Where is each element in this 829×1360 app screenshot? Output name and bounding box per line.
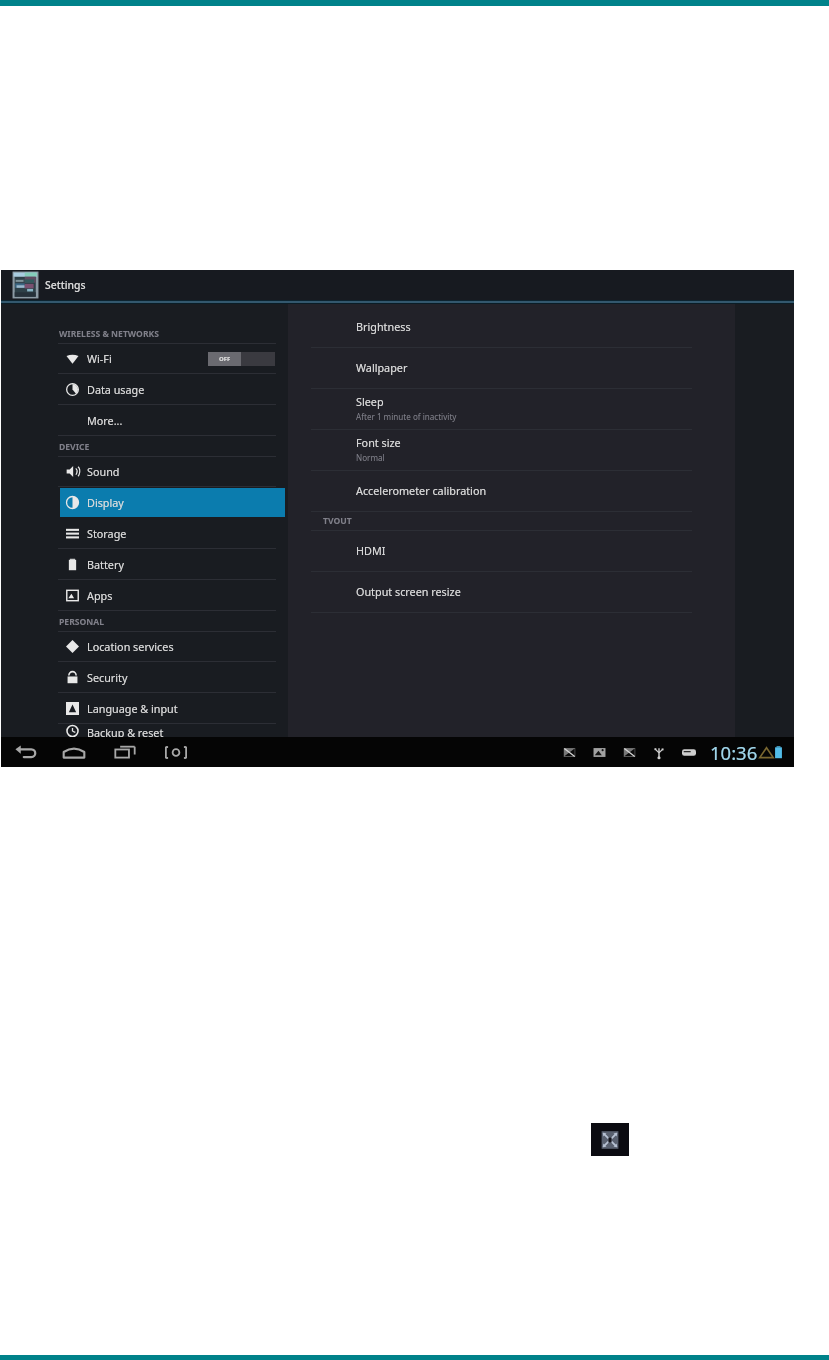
staticText: WIRELESS & NETWORKS	[59, 328, 159, 340]
staticText: Wi-Fi	[87, 351, 112, 366]
button[interactable]: Wi-Fi	[60, 344, 285, 373]
button[interactable]: OFF	[208, 352, 275, 366]
staticText: Output screen resize	[356, 584, 461, 599]
button[interactable]: Font size	[356, 430, 735, 470]
staticText: Battery	[87, 557, 124, 572]
staticText: DEVICE	[59, 441, 90, 453]
button[interactable]: Sleep	[356, 389, 735, 429]
staticText: Brightness	[356, 319, 411, 334]
staticText: Sleep	[356, 394, 384, 409]
button[interactable]: Wallpaper	[356, 348, 735, 388]
button[interactable]: Fullscreen	[591, 1123, 629, 1156]
staticText: Font size	[356, 435, 401, 450]
button[interactable]: Language & input	[60, 694, 285, 723]
button[interactable]: Brightness	[356, 307, 735, 347]
staticText: Wallpaper	[356, 360, 408, 375]
staticText: Data usage	[87, 382, 145, 397]
button[interactable]: Apps	[60, 581, 285, 610]
button[interactable]: Accelerometer calibration	[356, 471, 735, 511]
staticText: Backup & reset	[87, 725, 164, 737]
staticText: Storage	[87, 526, 127, 541]
button[interactable]: Display	[60, 488, 285, 517]
button[interactable]: Backup & reset	[60, 725, 285, 737]
staticText: More...	[87, 413, 123, 428]
button[interactable]: Data usage	[60, 375, 285, 404]
staticText: HDMI	[356, 543, 386, 558]
staticText: Settings	[45, 278, 86, 292]
button[interactable]: More...	[60, 406, 285, 435]
button[interactable]: Home	[49, 737, 99, 767]
button[interactable]: Battery	[60, 550, 285, 579]
button[interactable]: Recent apps	[99, 737, 150, 767]
staticText: Accelerometer calibration	[356, 483, 487, 498]
staticText: Apps	[87, 588, 113, 603]
staticText: After 1 minute of inactivity	[356, 411, 457, 422]
button[interactable]: Sound	[60, 457, 285, 486]
button[interactable]: Storage	[60, 519, 285, 548]
staticText: 10:36	[710, 740, 758, 765]
staticText: Language & input	[87, 701, 178, 716]
button[interactable]: HDMI	[356, 531, 735, 571]
staticText: TVOUT	[323, 515, 352, 527]
button[interactable]: Output screen resize	[356, 572, 735, 612]
staticText: Sound	[87, 464, 120, 479]
staticText: PERSONAL	[59, 616, 105, 628]
button[interactable]: Screenshot	[150, 737, 201, 767]
button[interactable]: Back	[3, 737, 49, 767]
staticText: OFF	[219, 355, 231, 363]
staticText: Display	[87, 495, 124, 510]
staticText: Security	[87, 670, 128, 685]
staticText: Location services	[87, 639, 174, 654]
button[interactable]: Location services	[60, 632, 285, 661]
staticText: Normal	[356, 452, 385, 463]
button[interactable]: Security	[60, 663, 285, 692]
